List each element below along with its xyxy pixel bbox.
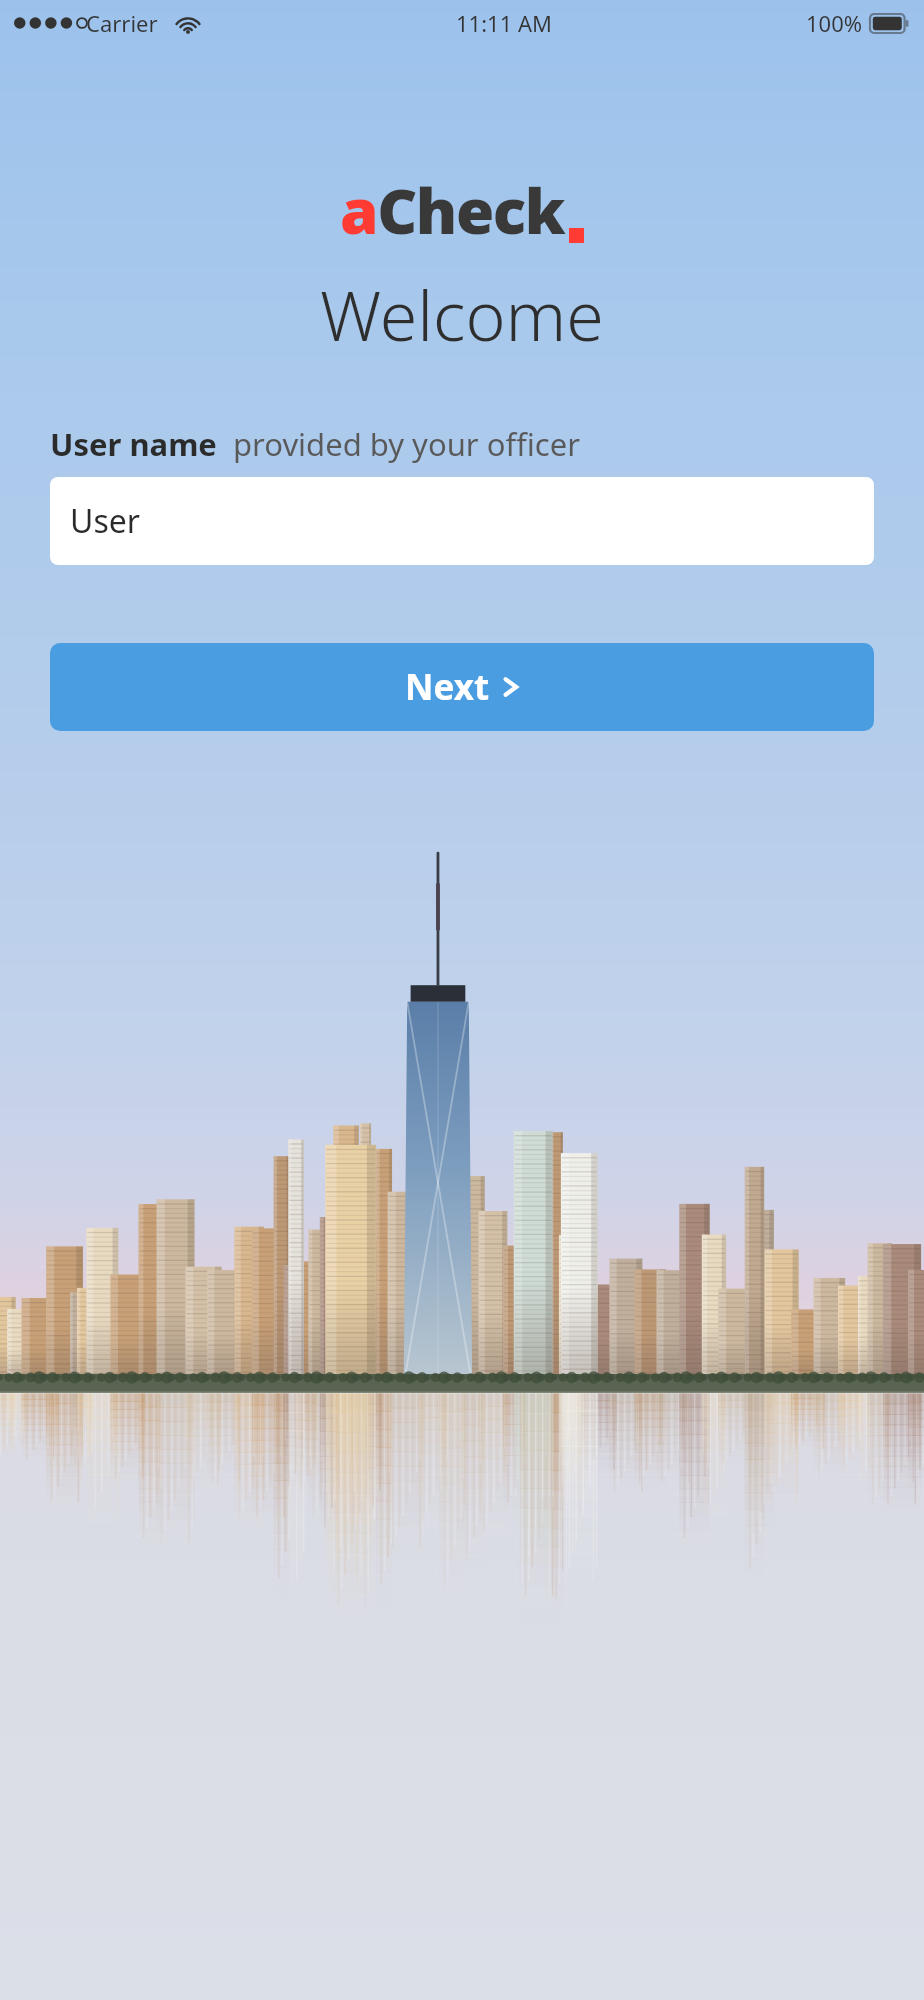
button[interactable]: User	[50, 477, 874, 565]
staticText: 11:11 AM	[456, 8, 552, 38]
staticText: 100%	[806, 8, 863, 38]
staticText: Carrier	[86, 8, 158, 38]
staticText: Next	[405, 663, 490, 711]
other: Next	[501, 672, 520, 702]
staticText: Welcome	[320, 268, 604, 361]
button[interactable]: Next	[50, 643, 874, 731]
staticText: User	[70, 499, 140, 543]
staticText: User name provided by your officer	[50, 423, 580, 465]
staticText: aCheck	[340, 168, 564, 252]
